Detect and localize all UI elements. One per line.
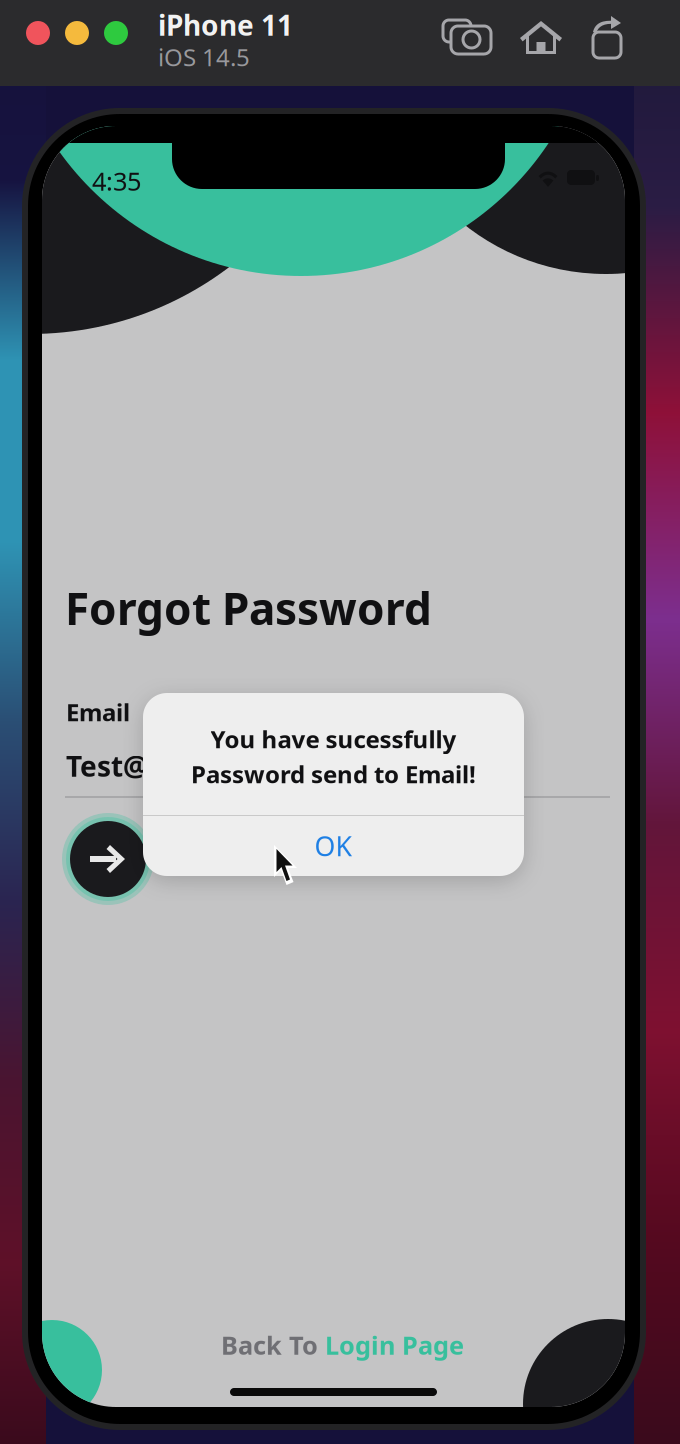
button[interactable]: Login Page [325, 1328, 464, 1362]
button[interactable]: Rotate [588, 16, 634, 62]
staticText: Password send to Email! [191, 758, 476, 790]
staticText: Forgot Password [65, 579, 432, 637]
staticText: 4:35 [92, 164, 141, 198]
button[interactable]: Screenshot [443, 16, 493, 62]
button[interactable]: OK [143, 816, 524, 876]
staticText: Email [66, 696, 130, 728]
button[interactable]: Home [518, 16, 568, 62]
button[interactable]: Submit [70, 821, 146, 897]
staticText: You have sucessfully [210, 723, 456, 755]
staticText: iOS 14.5 [158, 41, 250, 73]
staticText: OK [314, 828, 352, 864]
button[interactable]: Zoom window [104, 21, 128, 45]
staticText: iPhone 11 [158, 6, 293, 44]
staticText: Login Page [325, 1328, 464, 1362]
staticText: Back To [221, 1328, 325, 1362]
staticText: Test@ [66, 747, 148, 785]
button[interactable]: Minimise window [65, 21, 89, 45]
button[interactable]: Close window [26, 21, 50, 45]
